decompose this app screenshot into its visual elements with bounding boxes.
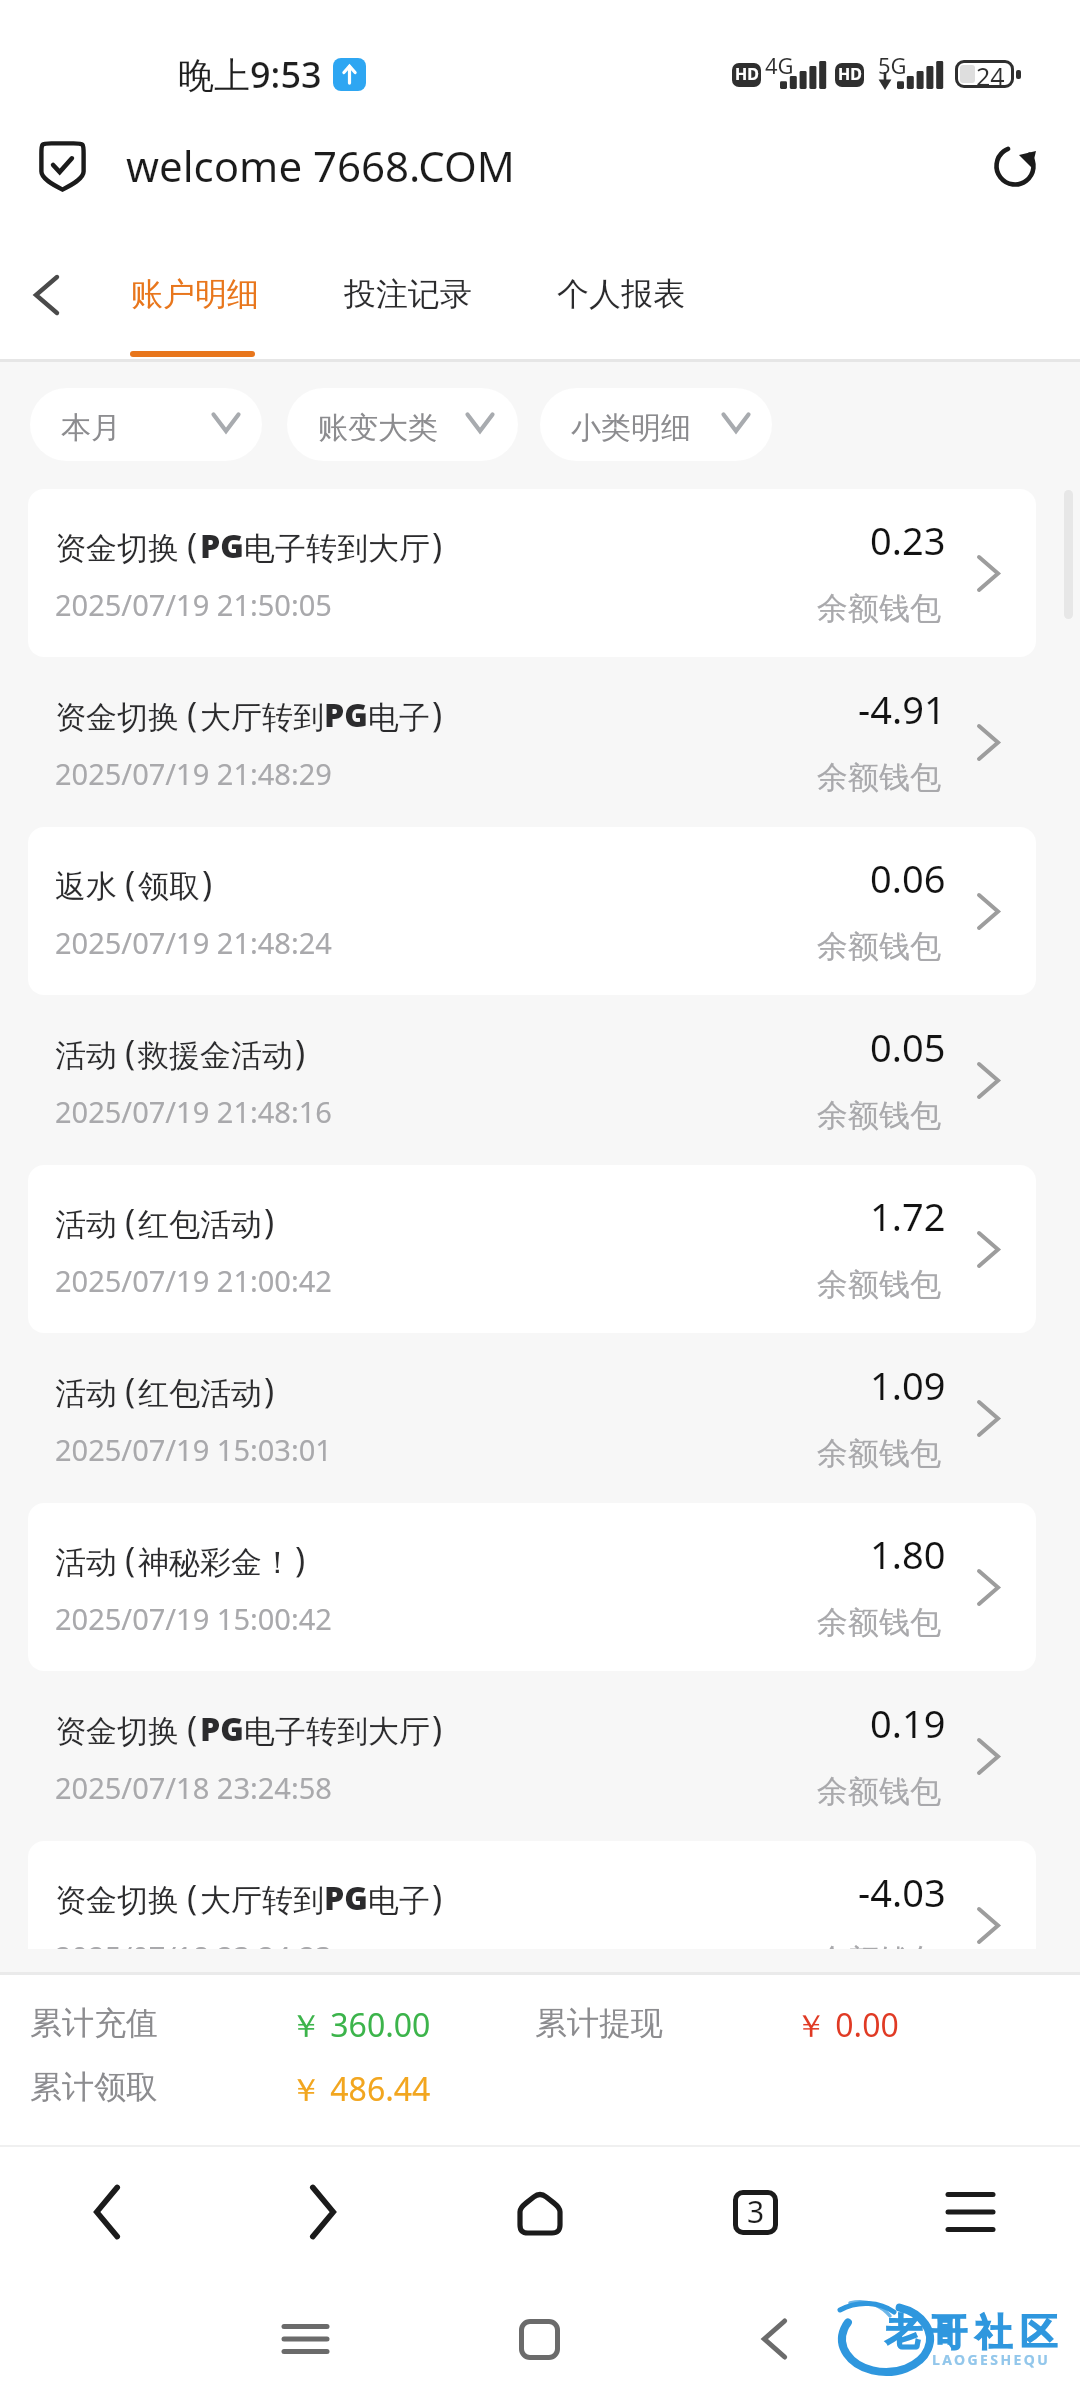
staticText: 2025/07/19 21:48:24 [55, 923, 332, 962]
button[interactable]: 本月 [30, 388, 262, 461]
staticText: 2025/07/19 15:03:01 [55, 1430, 332, 1469]
staticText: PG [324, 693, 368, 737]
button[interactable]: Recents [260, 2294, 350, 2384]
staticText: ) [432, 522, 443, 568]
staticText: 2025/07/19 15:00:42 [55, 1599, 332, 1638]
button[interactable]: 资金切换 [28, 1841, 1036, 1949]
staticText: -4.03 [858, 1866, 946, 1918]
staticText: ( [187, 1705, 198, 1751]
staticText: 余额钱包 [817, 927, 941, 966]
staticText: 0.05 [870, 1021, 946, 1073]
staticText: 大厅转到 [200, 698, 324, 737]
button[interactable]: 个人报表 [535, 250, 703, 344]
staticText: HD [735, 63, 759, 85]
staticText: 电子转到大厅 [244, 1712, 430, 1751]
staticText: 活动 [55, 1205, 117, 1244]
staticText: LAOGESHEQU [932, 2350, 1051, 2369]
staticText: 5G [878, 50, 907, 80]
staticText: 2025/07/19 21:50:05 [55, 585, 332, 624]
staticText: 资金切换 [55, 1881, 179, 1920]
staticText: HD [838, 63, 862, 85]
staticText: 活动 [55, 1374, 117, 1413]
button[interactable]: 活动 [28, 1503, 1036, 1671]
staticText: 4G [765, 50, 794, 80]
button[interactable]: 返水 [28, 827, 1036, 995]
staticText: ( [125, 860, 136, 906]
staticText: 返水 [55, 867, 117, 906]
button[interactable]: Tabs [710, 2167, 800, 2257]
staticText: ) [295, 1536, 306, 1582]
staticText: 24 [976, 59, 1005, 87]
staticText: ) [202, 860, 213, 906]
staticText: 个人报表 [557, 274, 685, 314]
staticText: 账变大类 [318, 409, 438, 447]
staticText: 余额钱包 [817, 1941, 941, 1949]
button[interactable]: 资金切换 [28, 489, 1036, 657]
staticText: ￥ 360.00 [290, 2003, 431, 2047]
staticText: ( [125, 1367, 136, 1413]
staticText: 2025/07/19 21:00:42 [55, 1261, 332, 1300]
staticText: 3 [747, 2191, 765, 2232]
staticText: 余额钱包 [817, 1603, 941, 1642]
staticText: 余额钱包 [817, 1096, 941, 1135]
staticText: 2025/07/18 23:24:58 [55, 1768, 332, 1807]
staticText: 累计领取 [30, 2067, 158, 2107]
button[interactable]: Forward [278, 2167, 368, 2257]
staticText: 资金切换 [55, 1712, 179, 1751]
staticText: 余额钱包 [817, 758, 941, 797]
staticText: 电子 [368, 698, 430, 737]
staticText: ) [432, 691, 443, 737]
staticText: 1.72 [870, 1190, 946, 1242]
staticText: 余额钱包 [817, 1772, 941, 1811]
staticText: ) [264, 1367, 275, 1413]
button[interactable]: Home [495, 2167, 585, 2257]
button[interactable]: 小类明细 [540, 388, 772, 461]
staticText: ( [187, 691, 198, 737]
staticText: ) [295, 1029, 306, 1075]
staticText: 2025/07/19 21:48:29 [55, 754, 332, 793]
staticText: ) [432, 1874, 443, 1920]
button[interactable]: Back [729, 2294, 819, 2384]
staticText: 投注记录 [344, 274, 472, 314]
staticText: ( [125, 1536, 136, 1582]
button[interactable]: 账变大类 [287, 388, 518, 461]
staticText: ) [432, 1705, 443, 1751]
staticText: 累计提现 [535, 2003, 663, 2043]
button[interactable]: Refresh [975, 126, 1055, 206]
staticText: ( [125, 1198, 136, 1244]
staticText: 电子转到大厅 [244, 529, 430, 568]
staticText: 资金切换 [55, 698, 179, 737]
button[interactable]: Back [62, 2167, 152, 2257]
staticText: 2025/07/18 23:24:23 [55, 1937, 332, 1949]
staticText: PG [200, 524, 244, 568]
staticText: 2025/07/19 21:48:16 [55, 1092, 332, 1131]
staticText: 0.23 [870, 514, 946, 566]
button[interactable]: 账户明细 [109, 250, 277, 344]
staticText: PG [324, 1876, 368, 1920]
staticText: 大厅转到 [200, 1881, 324, 1920]
button[interactable]: 资金切换 [0, 1672, 1080, 1840]
staticText: 1.09 [870, 1359, 946, 1411]
staticText: 救援金活动 [138, 1036, 293, 1075]
staticText: ( [187, 522, 198, 568]
staticText: ) [264, 1198, 275, 1244]
button[interactable]: Home [494, 2294, 584, 2384]
button[interactable]: 投注记录 [322, 250, 490, 344]
staticText: welcome 7668.COM [126, 137, 515, 194]
staticText: 老哥社区 [881, 2309, 1061, 2356]
staticText: 累计充值 [30, 2003, 158, 2043]
button[interactable]: 活动 [0, 1334, 1080, 1502]
staticText: 余额钱包 [817, 589, 941, 628]
staticText: 1.80 [870, 1528, 946, 1580]
staticText: 电子 [368, 1881, 430, 1920]
button[interactable]: Back [8, 257, 84, 333]
button[interactable]: 活动 [28, 1165, 1036, 1333]
staticText: ￥ 0.00 [795, 2003, 899, 2047]
staticText: 资金切换 [55, 529, 179, 568]
staticText: 小类明细 [571, 409, 691, 447]
button[interactable]: 活动 [0, 996, 1080, 1164]
staticText: ( [187, 1874, 198, 1920]
button[interactable]: 资金切换 [0, 658, 1080, 826]
button[interactable]: Menu [925, 2167, 1015, 2257]
staticText: 活动 [55, 1036, 117, 1075]
